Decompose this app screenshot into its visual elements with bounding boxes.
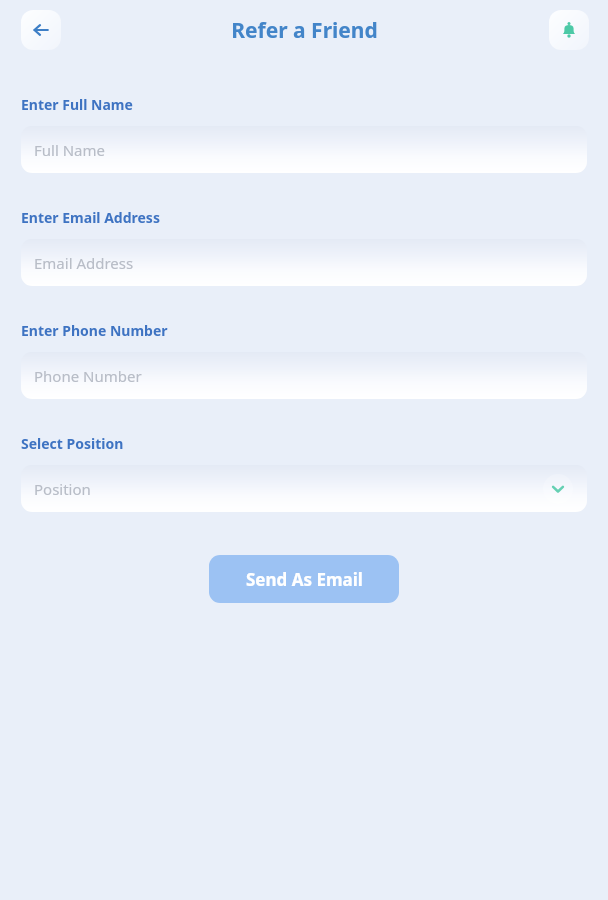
staticText: Select Position — [21, 434, 124, 453]
staticText: Send As Email — [246, 568, 363, 591]
button[interactable]: Position — [21, 465, 587, 512]
staticText: Refer a Friend — [231, 16, 378, 45]
button[interactable]: Email Address — [21, 239, 587, 286]
staticText: Enter Phone Number — [21, 321, 168, 340]
button[interactable]: Notifications — [549, 10, 589, 50]
button[interactable]: Phone Number — [21, 352, 587, 399]
staticText: Enter Email Address — [21, 208, 160, 227]
staticText: Position — [34, 479, 91, 499]
button[interactable]: Back — [21, 10, 61, 50]
staticText: Email Address — [34, 253, 134, 273]
button[interactable]: Full Name — [21, 126, 587, 173]
staticText: Enter Full Name — [21, 95, 133, 114]
button[interactable]: Open position list — [543, 474, 573, 504]
staticText: Phone Number — [34, 366, 142, 386]
button[interactable]: Send As Email — [209, 555, 399, 603]
staticText: Full Name — [34, 140, 105, 160]
